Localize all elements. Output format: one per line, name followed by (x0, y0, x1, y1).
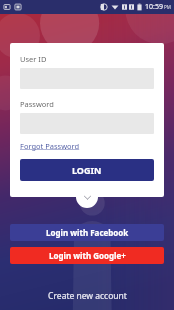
staticText: Forgot Password (20, 141, 80, 151)
staticText: Login with Google+ (49, 250, 126, 261)
staticText: PM (164, 4, 171, 10)
button[interactable]: Login with Google+ (10, 247, 164, 264)
button[interactable]: Login with Facebook (10, 224, 164, 241)
staticText: Login with Facebook (46, 227, 129, 238)
button[interactable]: Forgot Password (20, 141, 80, 151)
button[interactable]: LOGIN (20, 159, 154, 181)
staticText: Password (20, 99, 54, 109)
staticText: 10:59 (145, 2, 163, 12)
staticText: User ID (20, 54, 47, 64)
staticText: Create new account (48, 290, 127, 302)
button[interactable]: Create new account (0, 286, 174, 306)
button[interactable]: Expand (76, 186, 98, 208)
staticText: LOGIN (72, 164, 102, 176)
